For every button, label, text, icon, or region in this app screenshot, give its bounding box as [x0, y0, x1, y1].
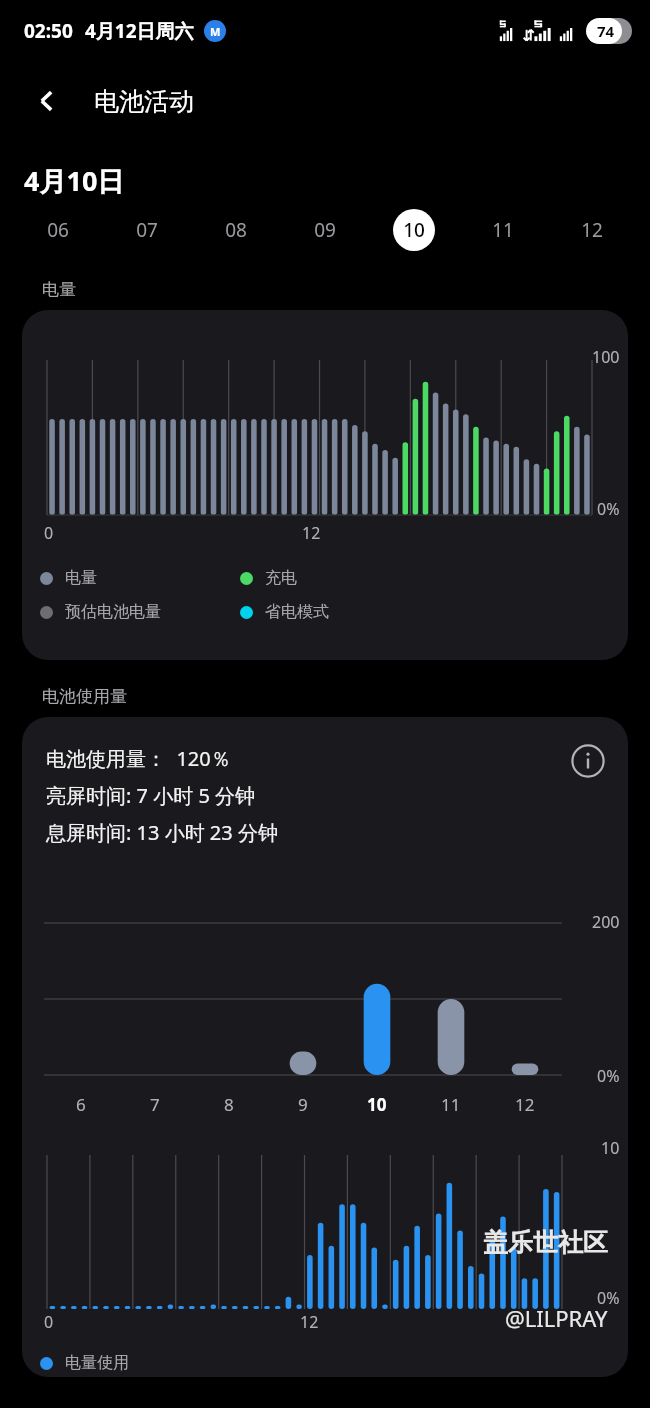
- button[interactable]: 07: [102, 199, 191, 261]
- button[interactable]: 100: [22, 310, 628, 660]
- staticText: 10: [601, 1137, 620, 1159]
- staticText: 74: [597, 21, 615, 41]
- staticText: 0: [44, 1311, 54, 1333]
- button[interactable]: 11: [458, 199, 547, 261]
- staticText: 12: [581, 217, 603, 243]
- staticText: 11: [441, 1093, 461, 1116]
- staticText: 电量: [65, 568, 97, 588]
- staticText: 09: [314, 217, 336, 243]
- staticText: 9: [298, 1093, 308, 1116]
- staticText: 6: [76, 1093, 86, 1116]
- staticText: 10: [367, 1093, 387, 1116]
- staticText: 02:50: [24, 18, 73, 44]
- staticText: 0%: [597, 498, 620, 520]
- staticText: 100: [592, 346, 620, 368]
- staticText: 8: [224, 1093, 234, 1116]
- staticText: 07: [136, 217, 158, 243]
- staticText: 4月10日: [24, 162, 125, 199]
- staticText: 12: [300, 1311, 319, 1333]
- button[interactable]: 信息: [566, 739, 610, 783]
- staticText: 06: [47, 217, 69, 243]
- staticText: @LILPRAY: [505, 1303, 608, 1333]
- staticText: 盖乐世社区: [483, 1227, 608, 1258]
- button[interactable]: 12: [547, 199, 636, 261]
- staticText: 12: [515, 1093, 535, 1116]
- staticText: 7: [150, 1093, 160, 1116]
- staticText: 10: [403, 217, 425, 243]
- staticText: 0%: [597, 1287, 620, 1309]
- staticText: 电池使用量: [42, 686, 127, 707]
- button[interactable]: 预估电池电量: [40, 602, 240, 622]
- staticText: M: [210, 24, 221, 39]
- button[interactable]: 电池使用量： 120％: [22, 717, 628, 1377]
- staticText: 充电: [265, 568, 297, 588]
- button[interactable]: 06: [14, 199, 102, 261]
- staticText: 省电模式: [265, 602, 329, 622]
- staticText: 200: [592, 911, 620, 933]
- button[interactable]: 省电模式: [240, 602, 329, 622]
- button[interactable]: 返回: [20, 74, 74, 128]
- staticText: 电池活动: [94, 86, 194, 117]
- button[interactable]: 充电: [240, 568, 297, 588]
- staticText: 0: [44, 522, 54, 544]
- staticText: 息屏时间: 13 小时 23 分钟: [46, 819, 278, 846]
- staticText: 4月12日周六: [85, 18, 194, 44]
- staticText: 亮屏时间: 7 小时 5 分钟: [46, 782, 256, 809]
- staticText: 电量: [42, 279, 76, 300]
- staticText: 11: [492, 217, 514, 243]
- staticText: 12: [302, 522, 321, 544]
- staticText: 电量使用: [65, 1353, 129, 1373]
- button[interactable]: 08: [191, 199, 280, 261]
- staticText: 0%: [597, 1065, 620, 1087]
- button[interactable]: 电量: [40, 568, 240, 588]
- staticText: 预估电池电量: [65, 602, 161, 622]
- staticText: 08: [225, 217, 247, 243]
- button[interactable]: 10: [369, 199, 458, 261]
- button[interactable]: 09: [280, 199, 369, 261]
- staticText: 电池使用量： 120％: [46, 745, 231, 772]
